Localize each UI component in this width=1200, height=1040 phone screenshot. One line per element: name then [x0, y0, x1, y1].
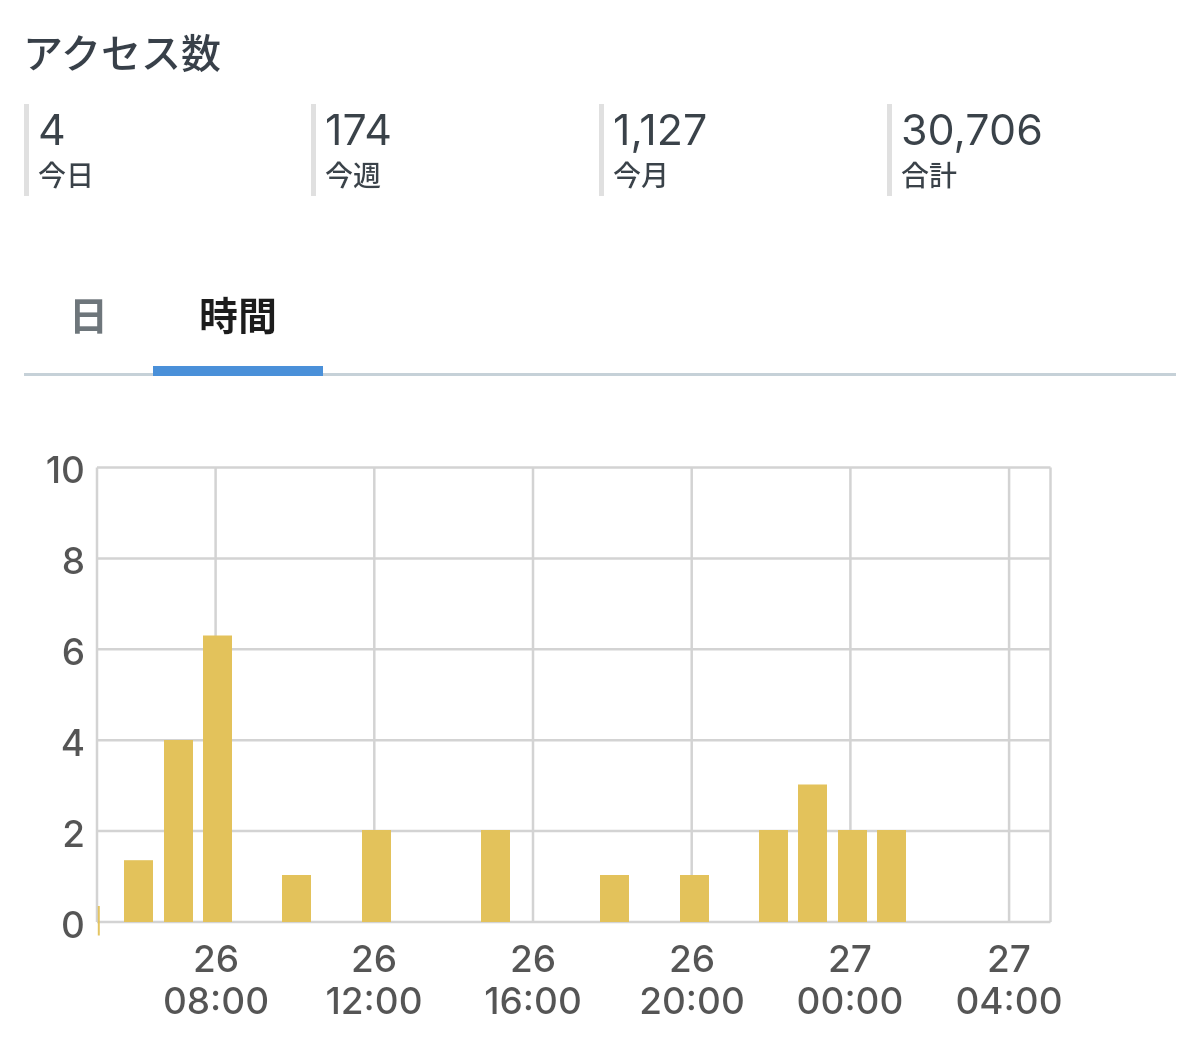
staticText: 26 16:00 [433, 936, 633, 1023]
staticText: 4 [38, 103, 66, 155]
button[interactable]: 時間 [153, 263, 323, 363]
button[interactable]: 1,127 [599, 104, 869, 198]
staticText: 4 [0, 720, 85, 765]
staticText: 174 [325, 103, 393, 155]
staticText: 今週 [325, 154, 382, 195]
staticText: 今月 [613, 154, 670, 195]
staticText: 6 [0, 629, 85, 674]
staticText: 0 [0, 902, 85, 947]
staticText: 10 [0, 447, 85, 492]
staticText: アクセス数 [23, 22, 221, 80]
staticText: 27 00:00 [750, 936, 950, 1023]
staticText: 日 [69, 285, 109, 341]
staticText: 2 [0, 811, 85, 856]
staticText: 30,706 [901, 103, 1043, 155]
staticText: 8 [0, 538, 85, 583]
staticText: 26 12:00 [274, 936, 474, 1023]
staticText: 1,127 [613, 103, 708, 155]
staticText: 27 04:00 [909, 936, 1109, 1023]
button[interactable]: 日 [24, 263, 153, 363]
staticText: 時間 [199, 285, 278, 341]
button[interactable]: 4 [24, 104, 294, 198]
button[interactable]: 174 [311, 104, 581, 198]
staticText: 合計 [901, 154, 958, 195]
button[interactable]: 30,706 [887, 104, 1157, 198]
staticText: 26 20:00 [592, 936, 792, 1023]
staticText: 今日 [38, 154, 95, 195]
staticText: 26 08:00 [116, 936, 316, 1023]
